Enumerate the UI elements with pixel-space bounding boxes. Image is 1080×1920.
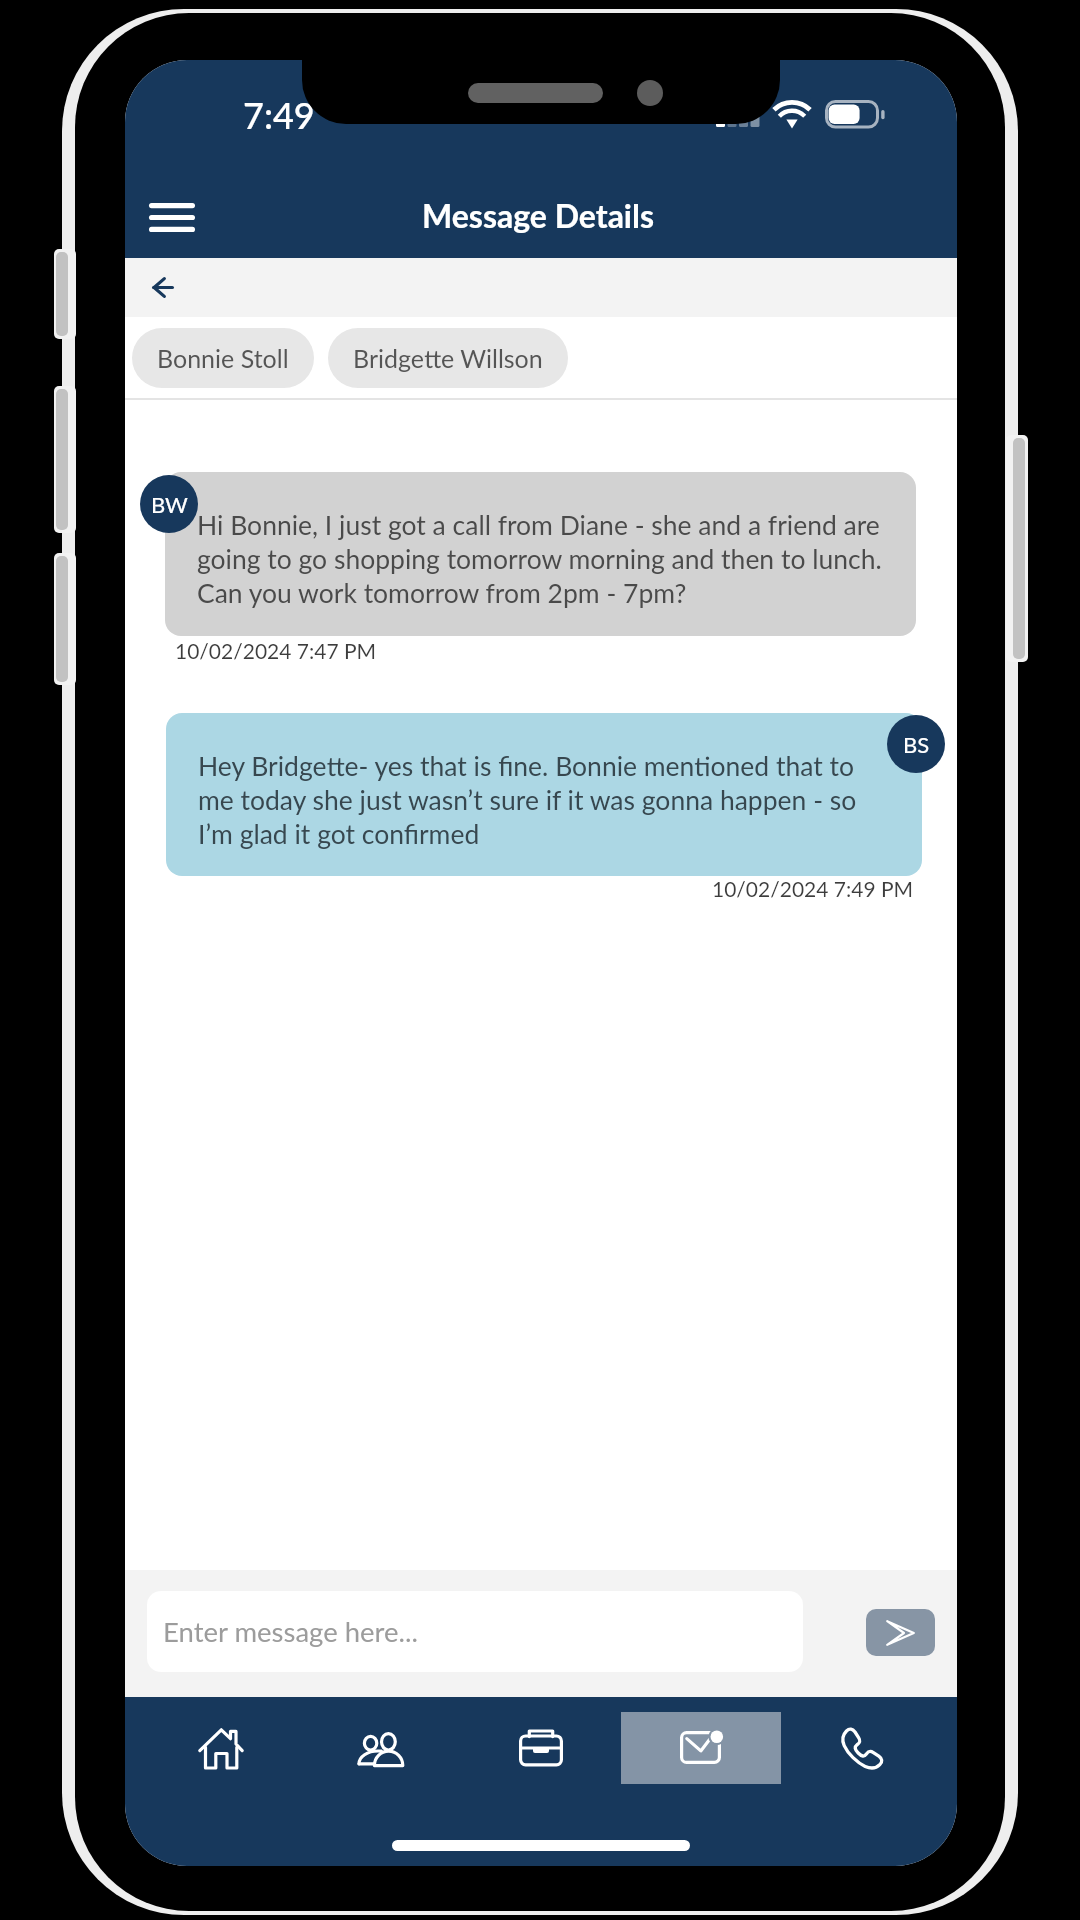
- staticText: Hi Bonnie, I just got a call from Diane …: [197, 509, 903, 608]
- staticText: Bonnie Stoll: [157, 343, 289, 373]
- staticText: Message Details: [422, 196, 655, 234]
- button[interactable]: Enter message here...: [147, 1591, 803, 1672]
- button[interactable]: Call: [781, 1712, 941, 1784]
- button[interactable]: Jobs: [461, 1712, 621, 1784]
- button[interactable]: Hi Bonnie, I just got a call from Diane …: [165, 472, 916, 636]
- button[interactable]: Messages: [621, 1712, 781, 1784]
- button[interactable]: Back: [130, 259, 196, 316]
- button[interactable]: Hey Bridgette- yes that is fine. Bonnie …: [166, 713, 922, 876]
- staticText: 10/02/2024 7:47 PM: [175, 638, 377, 663]
- button[interactable]: Home: [141, 1712, 301, 1784]
- staticText: BW: [151, 491, 188, 517]
- staticText: Hey Bridgette- yes that is fine. Bonnie …: [198, 750, 888, 849]
- button[interactable]: Contacts: [301, 1712, 461, 1784]
- staticText: BS: [903, 731, 930, 757]
- button[interactable]: Send message: [866, 1609, 935, 1656]
- staticText: Enter message here...: [163, 1615, 418, 1648]
- button[interactable]: Open navigation menu: [129, 182, 215, 252]
- staticText: 10/02/2024 7:49 PM: [712, 876, 914, 901]
- button[interactable]: Bridgette Willson: [328, 328, 568, 388]
- staticText: Bridgette Willson: [353, 343, 543, 373]
- button[interactable]: Bonnie Stoll: [132, 328, 314, 388]
- staticText: 7:49: [243, 93, 315, 136]
